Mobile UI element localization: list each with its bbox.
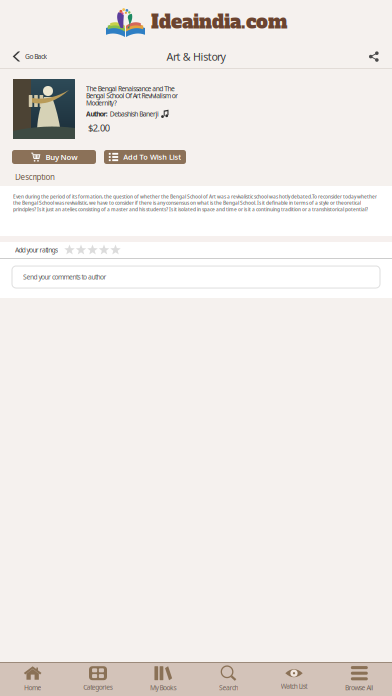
staticText: Send your comments to author	[23, 272, 106, 282]
button[interactable]: Search	[196, 662, 261, 696]
button[interactable]: Browse All	[327, 662, 392, 696]
button[interactable]: Home	[0, 662, 65, 696]
staticText: Description	[15, 172, 55, 182]
staticText: Search	[219, 683, 238, 692]
staticText: Buy Now	[45, 152, 77, 162]
staticText: Go Back	[25, 52, 47, 61]
button[interactable]: Buy Now	[12, 150, 96, 164]
staticText: Categories	[83, 683, 113, 692]
staticText: Add To Wish List	[123, 152, 181, 162]
staticText: Ideaindia.com	[151, 9, 287, 35]
button[interactable]: Go Back	[0, 44, 59, 69]
staticText: Author:	[86, 109, 108, 118]
button[interactable]: Add To Wish List	[104, 150, 186, 164]
staticText: Even during the period of its formation,…	[13, 192, 377, 213]
staticText: Watch List	[281, 682, 307, 691]
staticText: The Bengal Renaissance and The Bengal Sc…	[86, 84, 178, 107]
staticText: $2.00	[88, 121, 110, 134]
staticText: Add your ratings	[15, 245, 58, 255]
staticText: Debashish Banerji	[110, 109, 159, 118]
staticText: My Books	[150, 683, 177, 692]
staticText: Home	[24, 683, 41, 692]
button[interactable]: Categories	[65, 662, 131, 696]
staticText: Art & History	[166, 49, 226, 64]
button[interactable]: Send your comments to author	[0, 258, 392, 298]
button[interactable]: My Books	[131, 662, 196, 696]
button[interactable]: Watch List	[261, 662, 327, 696]
staticText: Browse All	[345, 683, 374, 692]
button[interactable]: Share	[355, 44, 392, 69]
